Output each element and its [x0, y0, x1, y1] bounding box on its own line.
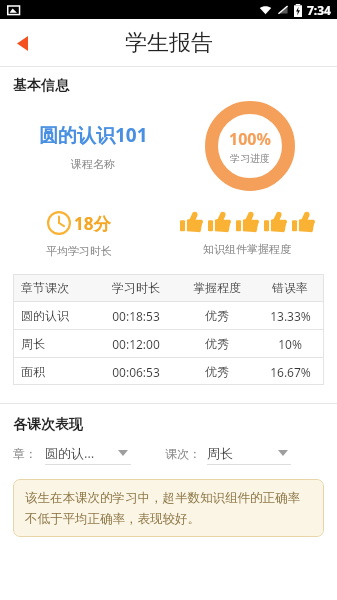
staticText: 学习进度	[230, 152, 270, 165]
staticText: 课程名称	[71, 157, 115, 171]
staticText: 掌握程度	[193, 280, 241, 295]
button[interactable]: Back	[0, 21, 44, 65]
staticText: 知识组件掌握程度	[203, 242, 291, 256]
staticText: 优秀	[205, 336, 229, 351]
staticText: 圆的认识	[21, 308, 69, 323]
staticText: 学生报告	[125, 29, 213, 57]
staticText: 10%	[278, 336, 302, 352]
staticText: 章：	[13, 446, 37, 461]
button[interactable]: 圆的认…	[45, 442, 131, 465]
staticText: 平均学习时长	[46, 244, 112, 258]
staticText: 优秀	[205, 308, 229, 323]
staticText: 该生在本课次的学习中，超半数知识组件的正确率不低于平均正确率，表现较好。	[25, 490, 312, 526]
staticText: 基本信息	[13, 77, 69, 95]
staticText: 100%	[229, 128, 271, 150]
staticText: 学习时长	[112, 280, 160, 295]
staticText: 圆的认…	[45, 444, 95, 462]
button[interactable]: 周长	[207, 442, 291, 465]
staticText: 优秀	[205, 364, 229, 379]
staticText: 圆的认识101	[39, 122, 148, 148]
staticText: 00:06:53	[112, 364, 160, 380]
staticText: 13.33%	[270, 308, 311, 324]
staticText: 错误率	[272, 280, 308, 295]
staticText: 各课次表现	[13, 416, 83, 434]
staticText: 00:18:53	[112, 308, 160, 324]
staticText: 面积	[21, 364, 45, 379]
staticText: 16.67%	[270, 364, 311, 380]
staticText: 18分	[74, 212, 111, 235]
staticText: 课次：	[165, 446, 201, 461]
staticText: 7:34	[307, 2, 331, 18]
staticText: 周长	[207, 445, 233, 461]
staticText: 00:12:00	[112, 336, 160, 352]
staticText: 周长	[21, 336, 45, 351]
staticText: 章节课次	[21, 280, 69, 295]
